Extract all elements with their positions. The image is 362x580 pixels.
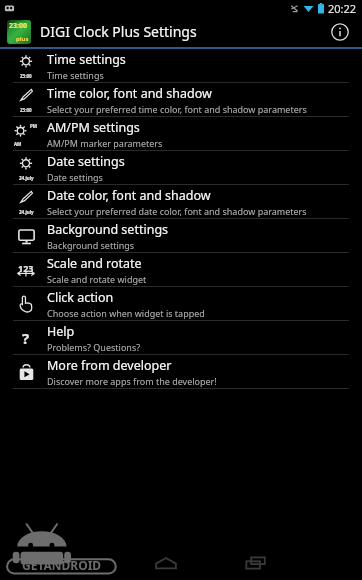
button[interactable]: Recent apps [234,546,278,580]
button[interactable]: 24.july [0,151,362,184]
staticText: Time settings [47,69,104,81]
staticText: Scale and rotate widget [47,273,147,285]
staticText: Choose action when widget is tapped [47,307,205,319]
button[interactable]: 123 [0,253,362,286]
staticText: Time color, font and shadow [47,85,212,102]
button[interactable]: 23:00 [0,49,362,82]
staticText: PM [30,123,38,129]
staticText: 23:00 [20,107,32,113]
staticText: AM/PM marker parameters [47,137,163,149]
staticText: 23:00 [9,21,27,31]
button[interactable]: Back [83,546,127,580]
staticText: Discover more apps from the developer! [47,375,217,387]
staticText: ? [22,328,30,348]
button[interactable]: Click action [0,287,362,320]
staticText: 24.july [19,175,34,181]
staticText: plus [16,35,29,43]
staticText: Help [47,323,75,340]
staticText: Date settings [47,171,103,183]
button[interactable]: Background settings [0,219,362,252]
button[interactable]: PM [0,117,362,150]
button[interactable]: ? [0,321,362,354]
button[interactable]: 23:00 [0,83,362,116]
staticText: Background settings [47,221,169,238]
staticText: Time settings [47,51,126,68]
staticText: Select your preferred date color, font a… [47,205,307,217]
button[interactable]: About [325,17,355,47]
staticText: Background settings [47,239,135,251]
staticText: 24.july [19,209,34,215]
staticText: DIGI Clock Plus Settings [40,22,197,41]
staticText: Date color, font and shadow [47,187,211,204]
button[interactable]: More from developer [0,355,362,388]
button[interactable]: Home [144,546,188,580]
staticText: 20:22 [328,1,357,16]
staticText: More from developer [47,357,172,374]
button[interactable]: 24.july [0,185,362,218]
staticText: 23:00 [20,73,32,79]
staticText: 123 [18,262,34,274]
staticText: AM [14,141,22,147]
staticText: Select your preferred time color, font a… [47,103,307,115]
staticText: Click action [47,289,114,306]
staticText: Problems? Questions? [47,341,141,353]
staticText: AM/PM settings [47,119,140,136]
staticText: GETANDROID [22,557,102,573]
staticText: Date settings [47,153,125,170]
staticText: Scale and rotate [47,255,142,272]
